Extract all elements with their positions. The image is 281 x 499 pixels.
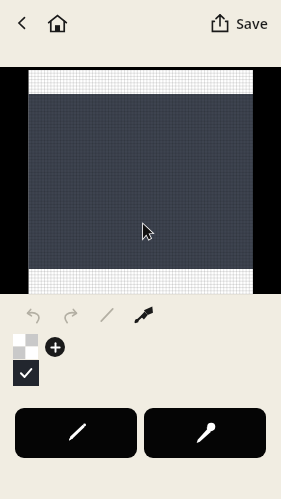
button[interactable]: Undo [20,301,48,329]
staticText: Save [236,14,268,33]
button[interactable]: Eyedropper [144,408,266,458]
button[interactable]: Pencil [15,408,137,458]
button[interactable]: Line tool [93,301,121,329]
button[interactable]: Transparent colour [13,334,38,359]
button[interactable]: Selected colour [13,360,39,386]
button[interactable]: Fill tool [128,299,158,329]
button[interactable]: Add colour [45,337,65,357]
button[interactable]: Redo [55,301,83,329]
button[interactable]: Save [230,8,274,38]
button[interactable]: Home [42,8,72,38]
button[interactable]: Share [205,8,235,38]
button[interactable]: Back [8,9,36,37]
